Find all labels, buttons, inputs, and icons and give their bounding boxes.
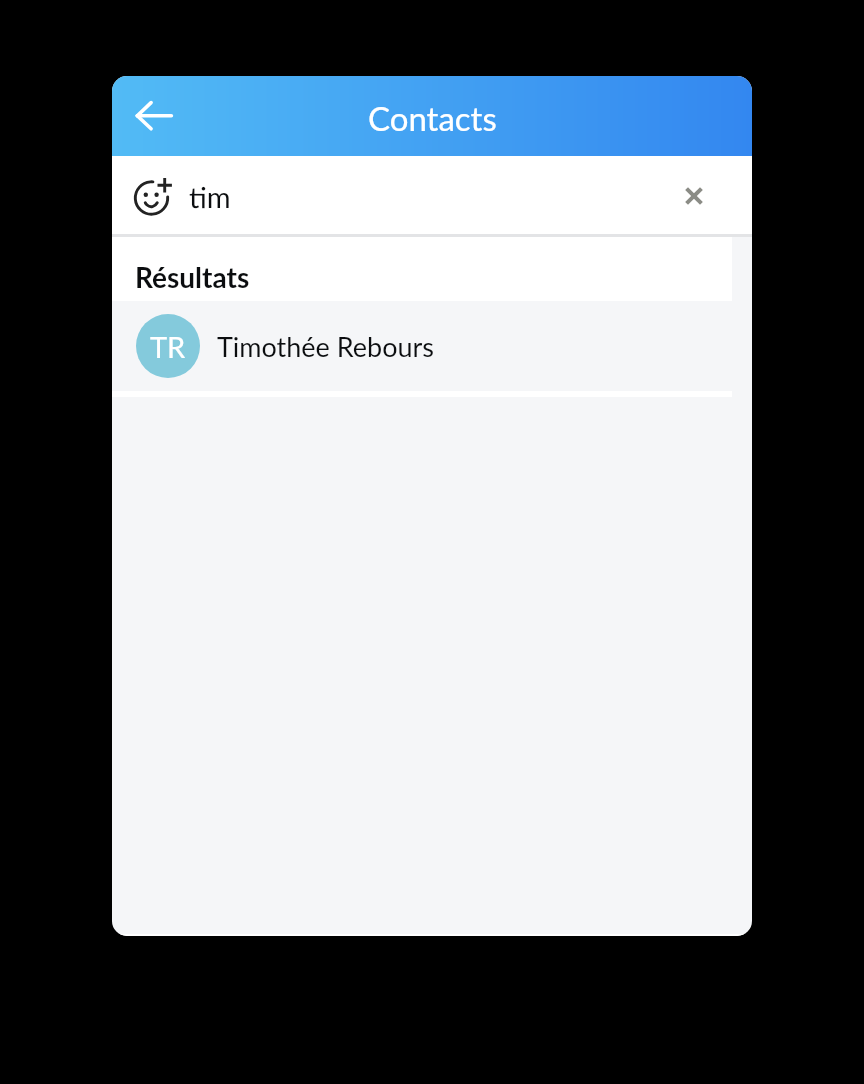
staticText: Résultats: [135, 260, 250, 294]
staticText: tim: [189, 179, 231, 214]
staticText: Timothée Rebours: [217, 330, 434, 362]
button[interactable]: TR: [112, 301, 752, 391]
button[interactable]: Clear search: [668, 169, 720, 221]
staticText: TR: [150, 329, 186, 364]
staticText: Contacts: [368, 98, 497, 138]
button[interactable]: Back: [123, 87, 181, 145]
button[interactable]: Add reaction: [130, 173, 174, 217]
